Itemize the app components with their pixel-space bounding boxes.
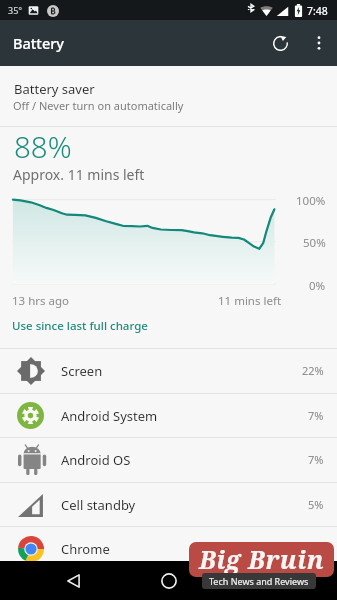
staticText: Off / Never turn on automatically [13,98,184,113]
staticText: 35° [8,4,23,16]
button[interactable]: Android System [0,394,337,437]
staticText: 13 hrs ago [12,293,69,309]
staticText: 11 mins left [218,293,282,309]
staticText: Screen [61,362,103,380]
staticText: Big Bruin [199,542,325,576]
button[interactable]: Android OS [0,438,337,481]
staticText: Android OS [61,451,131,469]
staticText: 7% [308,452,324,467]
staticText: Battery [13,33,64,53]
staticText: 7% [308,408,324,423]
staticText: Approx. 11 mins left [13,165,145,184]
button[interactable]: Home [156,568,181,593]
staticText: 50% [303,235,326,251]
staticText: 4% [308,541,324,556]
staticText: Battery saver [14,80,95,98]
staticText: 7:48 [307,4,328,18]
button[interactable]: Recents [251,568,276,593]
button[interactable]: Chrome [0,527,337,570]
button[interactable]: Back [61,568,86,593]
staticText: 22% [302,363,324,378]
staticText: 0% [309,278,326,294]
staticText: Chrome [61,540,110,558]
button[interactable]: Screen [0,349,337,392]
staticText: 100% [296,193,326,209]
staticText: Tech News and Reviews [209,575,309,587]
button[interactable]: Cell standby [0,483,337,526]
staticText: 5% [308,497,324,512]
staticText: 88% [14,126,72,166]
button[interactable]: More options [301,25,337,61]
staticText: Android System [61,407,158,425]
button[interactable]: Refresh [259,22,301,64]
staticText: Use since last full charge [12,318,148,334]
button[interactable]: Use since last full charge [0,310,337,342]
button[interactable]: Battery saver [0,66,337,126]
staticText: Cell standby [61,496,136,514]
